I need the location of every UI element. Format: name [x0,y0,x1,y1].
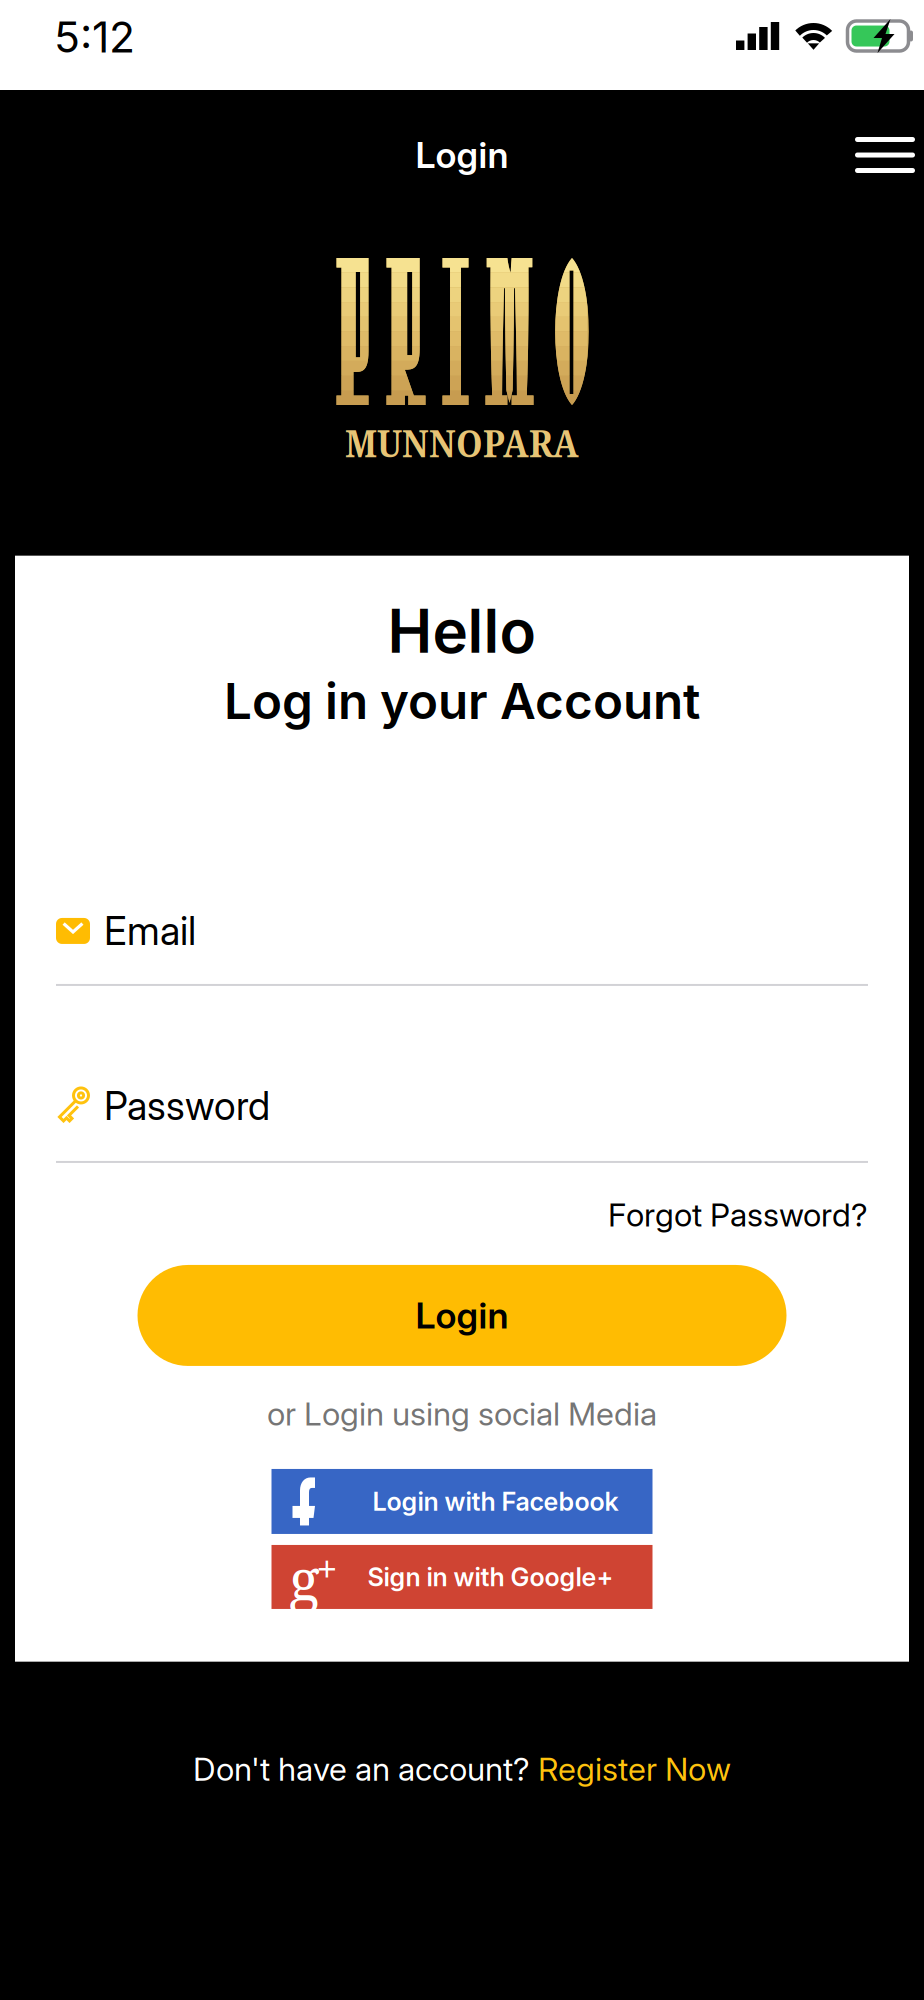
button[interactable]: g [271,1545,652,1609]
staticText: Login with Facebook [372,1486,618,1517]
staticText: Hello [387,595,536,667]
button[interactable]: Register Now [538,1750,731,1788]
button[interactable]: Login [137,1265,786,1366]
staticText: Register Now [538,1750,731,1788]
staticText: Login [415,1294,508,1337]
staticText: + [317,1544,337,1591]
staticText: or Login using social Media [267,1395,657,1433]
staticText: Don't have an account? [193,1750,538,1788]
button[interactable]: Forgot Password? [608,1196,868,1234]
staticText: g [289,1539,320,1617]
staticText: Forgot Password? [608,1196,868,1234]
staticText: MUNNOPARA [345,416,579,469]
staticText: Email [104,908,196,954]
staticText: Login [415,133,508,177]
button[interactable]: Login with Facebook [271,1469,652,1534]
button[interactable]: Menu [829,115,924,195]
staticText: Log in your Account [224,671,700,731]
staticText: 5:12 [54,11,135,63]
staticText: Password [104,1083,270,1129]
staticText: Sign in with Google+ [367,1562,613,1592]
